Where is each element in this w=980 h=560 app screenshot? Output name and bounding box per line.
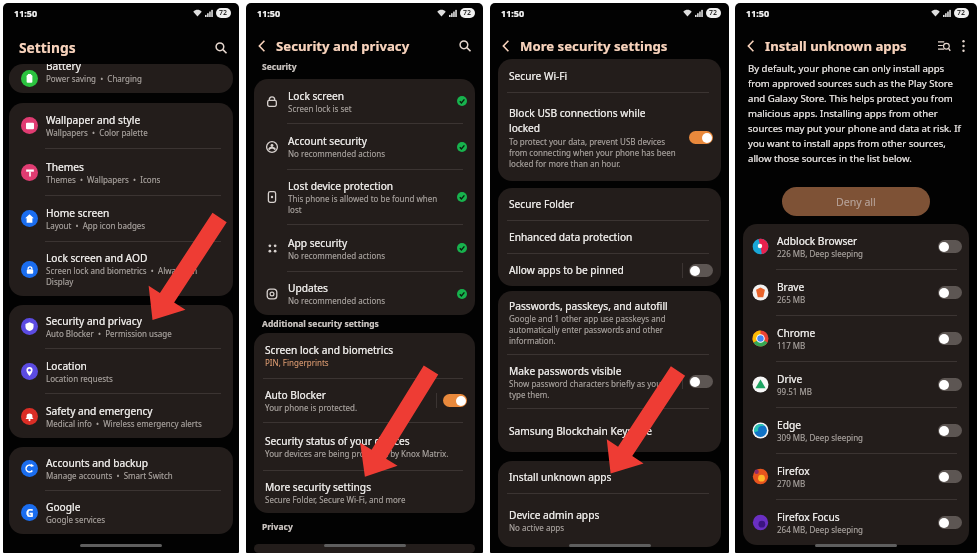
staticText: Drive (777, 372, 803, 386)
button[interactable]: Toggle off (938, 240, 962, 253)
staticText: 11:50 (746, 7, 770, 19)
staticText: Safety and emergency (46, 404, 153, 418)
button[interactable]: Install unknown apps (498, 461, 721, 493)
staticText: Chrome (777, 326, 816, 340)
button[interactable]: Deny all (782, 187, 930, 216)
button[interactable]: Device admin apps (498, 494, 721, 547)
button[interactable]: Search (454, 35, 476, 57)
button[interactable]: Back (741, 36, 761, 56)
staticText: 117 MB (777, 340, 806, 351)
button[interactable]: Firefox Focus (743, 500, 969, 545)
button[interactable]: Samsung Blockchain Keystore (498, 409, 721, 452)
button[interactable]: Block USB connections while locked (498, 93, 721, 181)
button[interactable]: Location (9, 349, 233, 393)
button[interactable]: Wallpaper and style (9, 103, 233, 148)
staticText: 11:50 (501, 7, 525, 19)
button[interactable]: Toggle off (689, 375, 713, 388)
staticText: Deny all (836, 195, 876, 209)
button[interactable]: Lock screen and AOD (9, 242, 233, 296)
button[interactable]: Toggle on (443, 394, 467, 407)
staticText: Security and privacy (276, 37, 410, 55)
button[interactable]: Account security (254, 124, 475, 169)
button[interactable]: Search settings (934, 36, 954, 56)
button[interactable]: Toggle on (689, 131, 713, 144)
staticText: Layout • App icon badges (46, 220, 146, 231)
staticText: 99.51 MB (777, 386, 812, 397)
button[interactable]: Toggle off (938, 332, 962, 345)
staticText: Screen lock is set (288, 103, 352, 114)
button[interactable]: Lock screen (254, 79, 475, 123)
staticText: Block USB connections while locked (509, 106, 676, 135)
button[interactable]: Chrome (743, 316, 969, 361)
button[interactable]: Updates (254, 272, 475, 315)
staticText: 11:50 (14, 7, 38, 19)
button[interactable]: Brave (743, 270, 969, 315)
button[interactable]: Toggle off (938, 286, 962, 299)
button[interactable]: Security status of your devices (254, 423, 475, 470)
button[interactable]: Toggle off (938, 378, 962, 391)
button[interactable]: Drive (743, 362, 969, 407)
button[interactable]: Passwords, passkeys, and autofill (498, 291, 721, 354)
staticText: 264 MB, Deep sleeping (777, 524, 864, 535)
staticText: Themes • Wallpapers • Icons (46, 174, 161, 185)
staticText: Wallpaper and style (46, 113, 141, 127)
staticText: 309 MB, Deep sleeping (777, 432, 864, 443)
button[interactable]: Edge (743, 408, 969, 453)
button[interactable]: Toggle off (938, 424, 962, 437)
staticText: Brave (777, 280, 805, 294)
staticText: G (26, 506, 34, 520)
button[interactable]: Battery (9, 64, 233, 93)
staticText: Lock screen and AOD (46, 251, 148, 265)
button[interactable]: Back (252, 36, 272, 56)
staticText: More security settings (520, 37, 668, 55)
button[interactable]: G (9, 491, 233, 534)
button[interactable]: More options (955, 38, 971, 54)
button[interactable]: Back (496, 36, 516, 56)
staticText: Adblock Browser (777, 234, 858, 248)
staticText: Firefox Focus (777, 510, 840, 524)
button[interactable]: Accounts and backup (9, 447, 233, 490)
button[interactable]: Secure Folder (498, 188, 721, 220)
button[interactable]: Firefox (743, 454, 969, 499)
staticText: Account security (288, 134, 367, 148)
staticText: Battery (46, 64, 81, 73)
button[interactable]: Security and privacy (9, 305, 233, 348)
staticText: 11:50 (257, 7, 281, 19)
staticText: Secure Wi-Fi (509, 69, 568, 83)
staticText: 265 MB (777, 294, 806, 305)
staticText: Samsung Blockchain Keystore (509, 424, 652, 438)
button[interactable]: Allow apps to be pinned (498, 254, 721, 286)
staticText: Make passwords visible (509, 364, 622, 378)
staticText: No active apps (509, 522, 565, 533)
button[interactable]: Safety and emergency (9, 394, 233, 438)
button[interactable]: Adblock Browser (743, 224, 969, 269)
button[interactable]: Secure Wi-Fi (498, 59, 721, 92)
button[interactable]: Screen lock and biometrics (254, 333, 475, 378)
staticText: Auto Blocker • Permission usage (46, 328, 172, 339)
button[interactable]: Enhanced data protection (498, 221, 721, 253)
staticText: Google and 1 other app use passkeys and … (509, 313, 679, 346)
staticText: Manage accounts • Smart Switch (46, 470, 173, 481)
staticText: Install unknown apps (765, 37, 907, 55)
staticText: Auto Blocker (265, 388, 326, 402)
staticText: More security settings (265, 480, 372, 494)
button[interactable]: Themes (9, 149, 233, 195)
button[interactable]: Toggle off (689, 264, 713, 277)
button[interactable]: Auto Blocker (254, 379, 475, 422)
staticText: Settings (19, 38, 76, 57)
button[interactable]: Make passwords visible (498, 355, 721, 408)
button[interactable]: Lost device protection (254, 170, 475, 224)
staticText: No recommended actions (288, 250, 386, 261)
button[interactable]: Toggle off (938, 470, 962, 483)
button[interactable]: Home screen (9, 196, 233, 241)
button[interactable]: Search (210, 37, 232, 59)
staticText: PIN, Fingerprints (265, 357, 329, 368)
staticText: Security and privacy (46, 314, 142, 328)
staticText: 72 (463, 8, 472, 18)
staticText: No recommended actions (288, 295, 386, 306)
button[interactable]: More security settings (254, 471, 475, 513)
button[interactable]: App security (254, 225, 475, 271)
staticText: Security (262, 61, 297, 73)
button[interactable]: Toggle off (938, 516, 962, 529)
staticText: Google services (46, 514, 106, 525)
